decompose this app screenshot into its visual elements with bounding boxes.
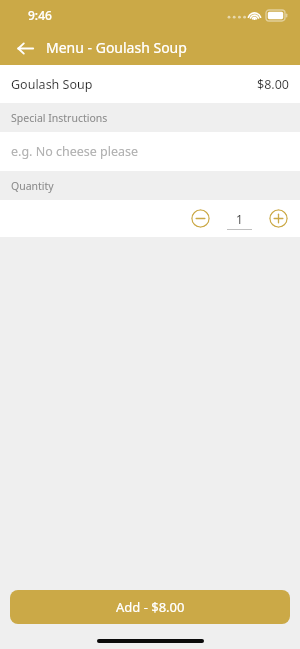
button[interactable]: Back — [12, 35, 38, 61]
button[interactable]: Goulash Soup — [0, 65, 300, 103]
button[interactable]: e.g. No cheese please — [0, 132, 300, 171]
button[interactable]: Decrease quantity — [191, 209, 210, 228]
button[interactable]: Add - $8.00 — [10, 590, 290, 624]
staticText: Add - $8.00 — [116, 598, 185, 616]
button[interactable]: Increase quantity — [269, 209, 288, 228]
staticText: Menu - Goulash Soup — [46, 38, 187, 57]
staticText: $8.00 — [257, 76, 289, 93]
staticText: 9:46 — [28, 7, 52, 23]
staticText: 1 — [236, 211, 243, 227]
staticText: Special Instructions — [11, 111, 108, 125]
button[interactable]: 1 — [223, 208, 256, 229]
staticText: e.g. No cheese please — [11, 143, 139, 160]
staticText: Goulash Soup — [11, 76, 93, 93]
staticText: Quantity — [11, 179, 54, 193]
